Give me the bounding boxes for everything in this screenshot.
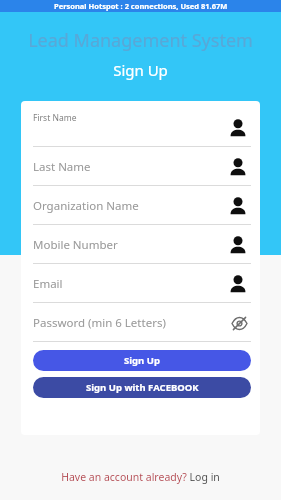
staticText: Sign Up xyxy=(124,354,160,367)
staticText: Last Name xyxy=(33,159,91,175)
button[interactable]: Sign Up with FACEBOOK xyxy=(33,377,251,398)
staticText: Mobile Number xyxy=(33,237,118,253)
button[interactable]: First Name xyxy=(33,108,251,147)
staticText: Sign Up with FACEBOOK xyxy=(86,381,199,394)
button[interactable]: Have an account already? Log in xyxy=(61,470,220,484)
staticText: First Name xyxy=(33,112,77,124)
button[interactable]: Last Name xyxy=(33,147,251,186)
staticText: Lead Management System xyxy=(28,28,253,53)
staticText: Password (min 6 Letters) xyxy=(33,315,166,331)
staticText: Organization Name xyxy=(33,198,139,214)
button[interactable]: Toggle password visibility xyxy=(227,311,251,335)
button[interactable]: Email xyxy=(33,264,251,303)
button[interactable]: Mobile Number xyxy=(33,225,251,264)
button[interactable]: Password (min 6 Letters) xyxy=(33,303,251,342)
staticText: Personal Hotspot : 2 connections, Used 8… xyxy=(54,1,228,11)
button[interactable]: Sign Up xyxy=(33,350,251,371)
staticText: Email xyxy=(33,276,63,292)
button[interactable]: Organization Name xyxy=(33,186,251,225)
staticText: Have an account already? Log in xyxy=(61,470,220,484)
staticText: Sign Up xyxy=(113,60,168,80)
